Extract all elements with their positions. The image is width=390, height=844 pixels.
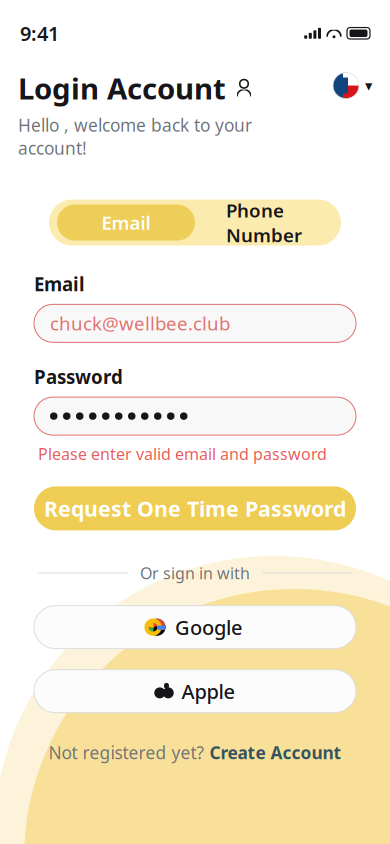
staticText: Create Account [209, 741, 341, 764]
staticText: 9:41 [20, 20, 59, 47]
button[interactable]: Email [57, 204, 195, 240]
staticText: Google [175, 614, 242, 640]
staticText: Apple [181, 678, 234, 704]
staticText: Login Account [18, 69, 226, 108]
staticText: Request One Time Password [44, 494, 346, 522]
staticText: Phone Number [226, 198, 302, 247]
button[interactable]: Not registered yet? [48, 741, 341, 764]
staticText: Not registered yet? [48, 741, 204, 764]
staticText: Please enter valid email and password [38, 443, 327, 464]
staticText: chuck@wellbee.club [50, 311, 230, 336]
staticText: Password [34, 364, 123, 389]
button[interactable] [34, 397, 356, 435]
button[interactable]: Select country [333, 69, 372, 99]
staticText: Email [34, 271, 85, 296]
staticText: Or sign in with [140, 562, 250, 584]
staticText: Hello , welcome back to your account! [18, 113, 252, 159]
button[interactable]: Apple [34, 670, 356, 713]
button[interactable]: Request One Time Password [34, 486, 356, 530]
staticText: Email [101, 210, 150, 235]
button[interactable]: Phone Number [195, 204, 333, 240]
button[interactable]: chuck@wellbee.club [34, 304, 356, 342]
staticText: ▾ [365, 77, 372, 94]
button[interactable]: Google [34, 606, 356, 649]
